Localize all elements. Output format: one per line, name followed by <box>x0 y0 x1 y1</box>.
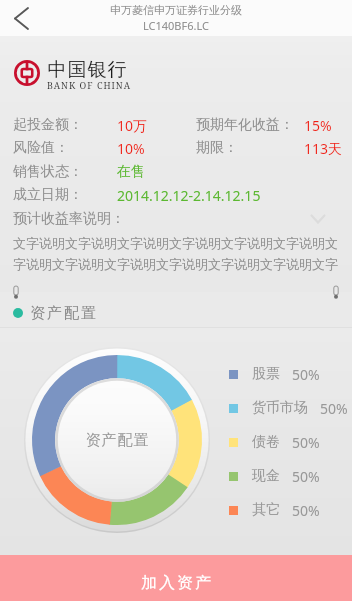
staticText: BANK OF CHINA <box>47 79 132 91</box>
staticText: 50% <box>292 433 320 452</box>
staticText: 中国银行 <box>47 58 127 82</box>
staticText: 在售 <box>117 163 145 181</box>
button[interactable]: 加入资产 <box>0 555 352 601</box>
staticText: 资产配置 <box>29 304 97 323</box>
staticText: 10万 <box>117 116 148 135</box>
button[interactable]: 货币市场 <box>229 397 348 419</box>
staticText: 50% <box>292 501 320 520</box>
staticText: 其它 <box>252 501 280 519</box>
staticText: 资产配置 <box>85 431 149 450</box>
staticText: 113天 <box>304 139 343 158</box>
staticText: LC140BF6.LC <box>143 18 209 33</box>
staticText: 15% <box>304 116 332 135</box>
staticText: 字说明文字说明文字说明文字说明文字说明文字说明文字 <box>13 256 338 272</box>
staticText: 成立日期： <box>13 186 83 204</box>
staticText: 50% <box>320 399 348 418</box>
staticText: 加入资产 <box>140 573 212 593</box>
staticText: 10% <box>117 139 145 158</box>
staticText: 销售状态： <box>13 163 83 181</box>
staticText: 2014.12.12-2.14.12.15 <box>117 186 261 205</box>
staticText: 风险值： <box>13 139 69 157</box>
button[interactable]: 股票 <box>229 363 320 385</box>
staticText: 50% <box>292 365 320 384</box>
staticText: 债卷 <box>252 433 280 451</box>
button[interactable]: 现金 <box>229 465 320 487</box>
staticText: 起投金额： <box>13 116 83 134</box>
button[interactable]: 债卷 <box>229 431 320 453</box>
staticText: 50% <box>292 467 320 486</box>
staticText: 股票 <box>252 365 280 383</box>
staticText: 文字说明文字说明文字说明文字说明文字说明文字说明文 <box>13 235 338 251</box>
staticText: 预期年化收益： <box>196 116 294 134</box>
button[interactable]: Back <box>4 0 38 36</box>
staticText: 期限： <box>196 139 238 157</box>
button[interactable]: 其它 <box>229 499 320 521</box>
staticText: 申万菱信申万证券行业分级 <box>110 3 242 17</box>
button[interactable]: 预计收益率说明： <box>0 208 352 230</box>
staticText: 货币市场 <box>252 399 308 417</box>
staticText: 预计收益率说明： <box>13 210 125 228</box>
staticText: 现金 <box>252 467 280 485</box>
